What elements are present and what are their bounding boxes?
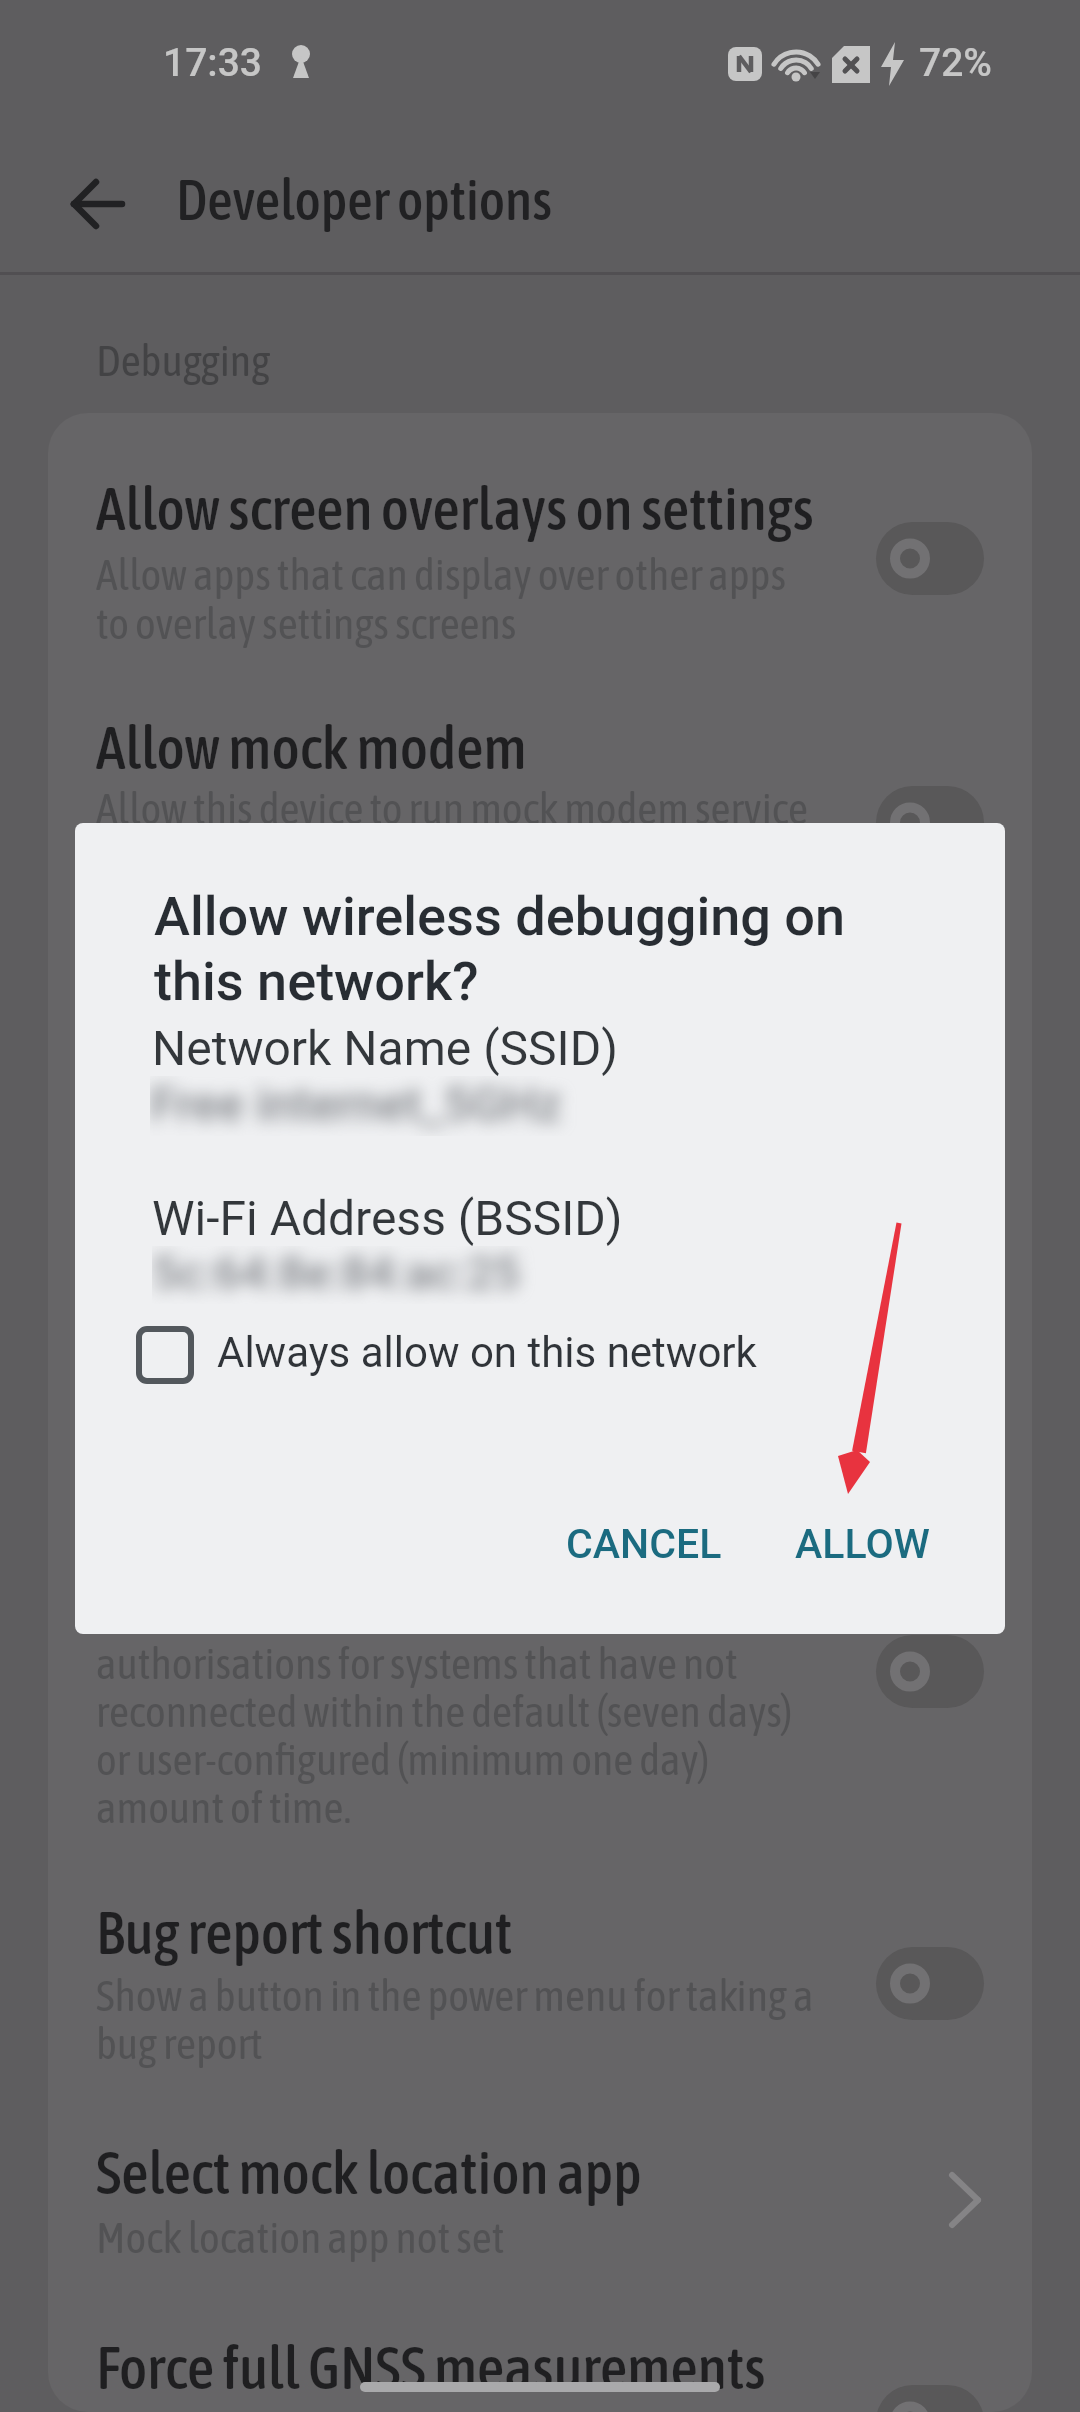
button[interactable] — [876, 786, 984, 859]
staticText: Debugging — [96, 335, 271, 385]
staticText: Allow mock modem — [96, 713, 527, 782]
staticText: authorisations for systems that have not — [96, 1638, 738, 1688]
button[interactable] — [130, 1315, 770, 1395]
staticText: Developer options — [176, 168, 553, 232]
staticText: reconnected within the default (seven da… — [96, 1686, 793, 1736]
staticText: Allow apps that can display over other a… — [96, 549, 786, 599]
staticText: Force full GNSS measurements — [96, 2333, 766, 2402]
button[interactable] — [48, 1870, 1032, 2090]
staticText: Allow this device to run mock modem serv… — [96, 783, 809, 833]
staticText: 17:33 — [163, 40, 263, 86]
button[interactable]: CANCEL — [566, 1520, 722, 1568]
button[interactable] — [876, 1635, 984, 1708]
staticText: or user-configured (minimum one day) — [96, 1734, 710, 1784]
staticText: bug report — [96, 2018, 263, 2068]
staticText: Mock location app not set — [96, 2212, 505, 2262]
staticText: amount of time. — [96, 1782, 352, 1832]
staticText: Allow screen overlays on settings — [96, 474, 814, 543]
button[interactable] — [48, 440, 1032, 680]
button[interactable] — [48, 690, 1032, 820]
staticText: 72% — [919, 40, 992, 86]
staticText: Show a button in the power menu for taki… — [96, 1970, 814, 2020]
button[interactable] — [876, 1947, 984, 2020]
button[interactable] — [64, 176, 128, 232]
staticText: this network? — [154, 950, 479, 1013]
staticText: Network Name (SSID) — [152, 1020, 618, 1076]
staticText: Select mock location app — [96, 2138, 642, 2207]
staticText: Always allow on this network — [217, 1328, 757, 1377]
staticText: Free internet_5GHz — [150, 1076, 562, 1132]
staticText: to overlay settings screens — [96, 598, 517, 648]
button[interactable] — [876, 2385, 984, 2412]
staticText: Wi-Fi Address (BSSID) — [152, 1190, 623, 1246]
button[interactable]: ALLOW — [795, 1520, 930, 1568]
staticText: Allow wireless debugging on — [154, 885, 846, 948]
staticText: Bug report shortcut — [96, 1898, 513, 1967]
button[interactable] — [48, 2110, 1032, 2310]
button[interactable] — [876, 522, 984, 595]
staticText: 5c:64:8e:84:ac:25 — [152, 1246, 520, 1300]
button[interactable] — [360, 2382, 720, 2392]
